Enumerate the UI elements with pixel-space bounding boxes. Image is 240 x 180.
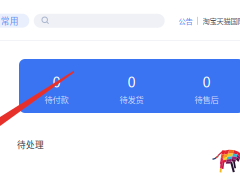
staticText: 待发货 (119, 93, 143, 105)
button[interactable]: 0 (19, 59, 94, 113)
staticText: 公告 (178, 15, 192, 26)
button[interactable]: 0 (94, 59, 169, 113)
button[interactable] (34, 14, 165, 28)
staticText: 淘宝天猫国际 (202, 15, 240, 26)
staticText: 0 (127, 70, 135, 92)
button[interactable]: 0 (169, 59, 240, 113)
staticText: 待付款 (44, 93, 68, 105)
button[interactable]: 公告 (178, 15, 192, 26)
staticText: 0 (202, 70, 210, 92)
staticText: 0 (52, 70, 60, 92)
staticText: 待处理 (17, 138, 44, 151)
staticText: 待售后 (194, 93, 218, 105)
button[interactable]: 常用 (0, 14, 29, 28)
staticText: 常用 (1, 14, 19, 27)
